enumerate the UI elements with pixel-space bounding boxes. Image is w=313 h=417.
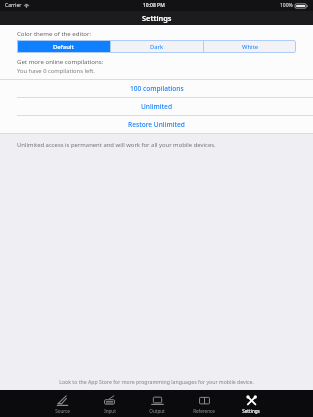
button[interactable]: Default xyxy=(17,40,110,53)
staticText: Source xyxy=(55,408,70,414)
staticText: 100 compilations xyxy=(130,84,184,93)
staticText: You have 0 compilations left. xyxy=(17,67,95,75)
staticText: Unlimited access is permanent and will w… xyxy=(17,141,216,149)
button[interactable]: White xyxy=(204,40,296,53)
staticText: 10:08 PM xyxy=(143,2,165,9)
button[interactable]: Output xyxy=(133,390,180,417)
staticText: Restore Unlimited xyxy=(128,120,185,129)
button[interactable]: Source xyxy=(39,390,86,417)
staticText: Look to the App Store for more programmi… xyxy=(0,378,313,385)
staticText: 100% xyxy=(280,2,293,9)
staticText: Settings xyxy=(142,13,172,23)
staticText: Color theme of the editor: xyxy=(17,29,92,37)
staticText: Reference xyxy=(193,408,215,414)
staticText: Input xyxy=(104,408,116,414)
button[interactable]: Settings xyxy=(227,390,274,417)
button[interactable]: Restore Unlimited xyxy=(0,116,313,133)
button[interactable]: 100 compilations xyxy=(0,80,313,97)
staticText: Settings xyxy=(242,408,260,414)
staticText: Unlimited xyxy=(141,102,172,111)
staticText: White xyxy=(242,43,259,51)
button[interactable]: Reference xyxy=(180,390,227,417)
button[interactable]: Input xyxy=(86,390,133,417)
staticText: Default xyxy=(53,43,74,51)
staticText: Dark xyxy=(150,43,164,51)
staticText: Get more online compilations: xyxy=(17,57,104,65)
button[interactable]: Dark xyxy=(111,40,203,53)
button[interactable]: Unlimited xyxy=(0,98,313,115)
staticText: Carrier xyxy=(5,2,22,9)
staticText: Output xyxy=(149,408,165,414)
